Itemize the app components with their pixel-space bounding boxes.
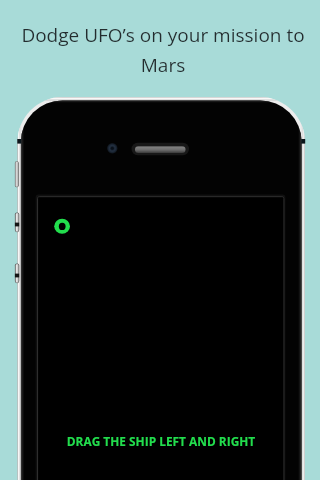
staticText: DRAG THE SHIP LEFT AND RIGHT <box>36 433 286 449</box>
button[interactable]: Game preview on phone <box>0 0 320 480</box>
button[interactable]: Tutorial page, tap to continue <box>0 0 320 480</box>
staticText: Dodge UFO’s on your mission to Mars <box>8 22 318 77</box>
